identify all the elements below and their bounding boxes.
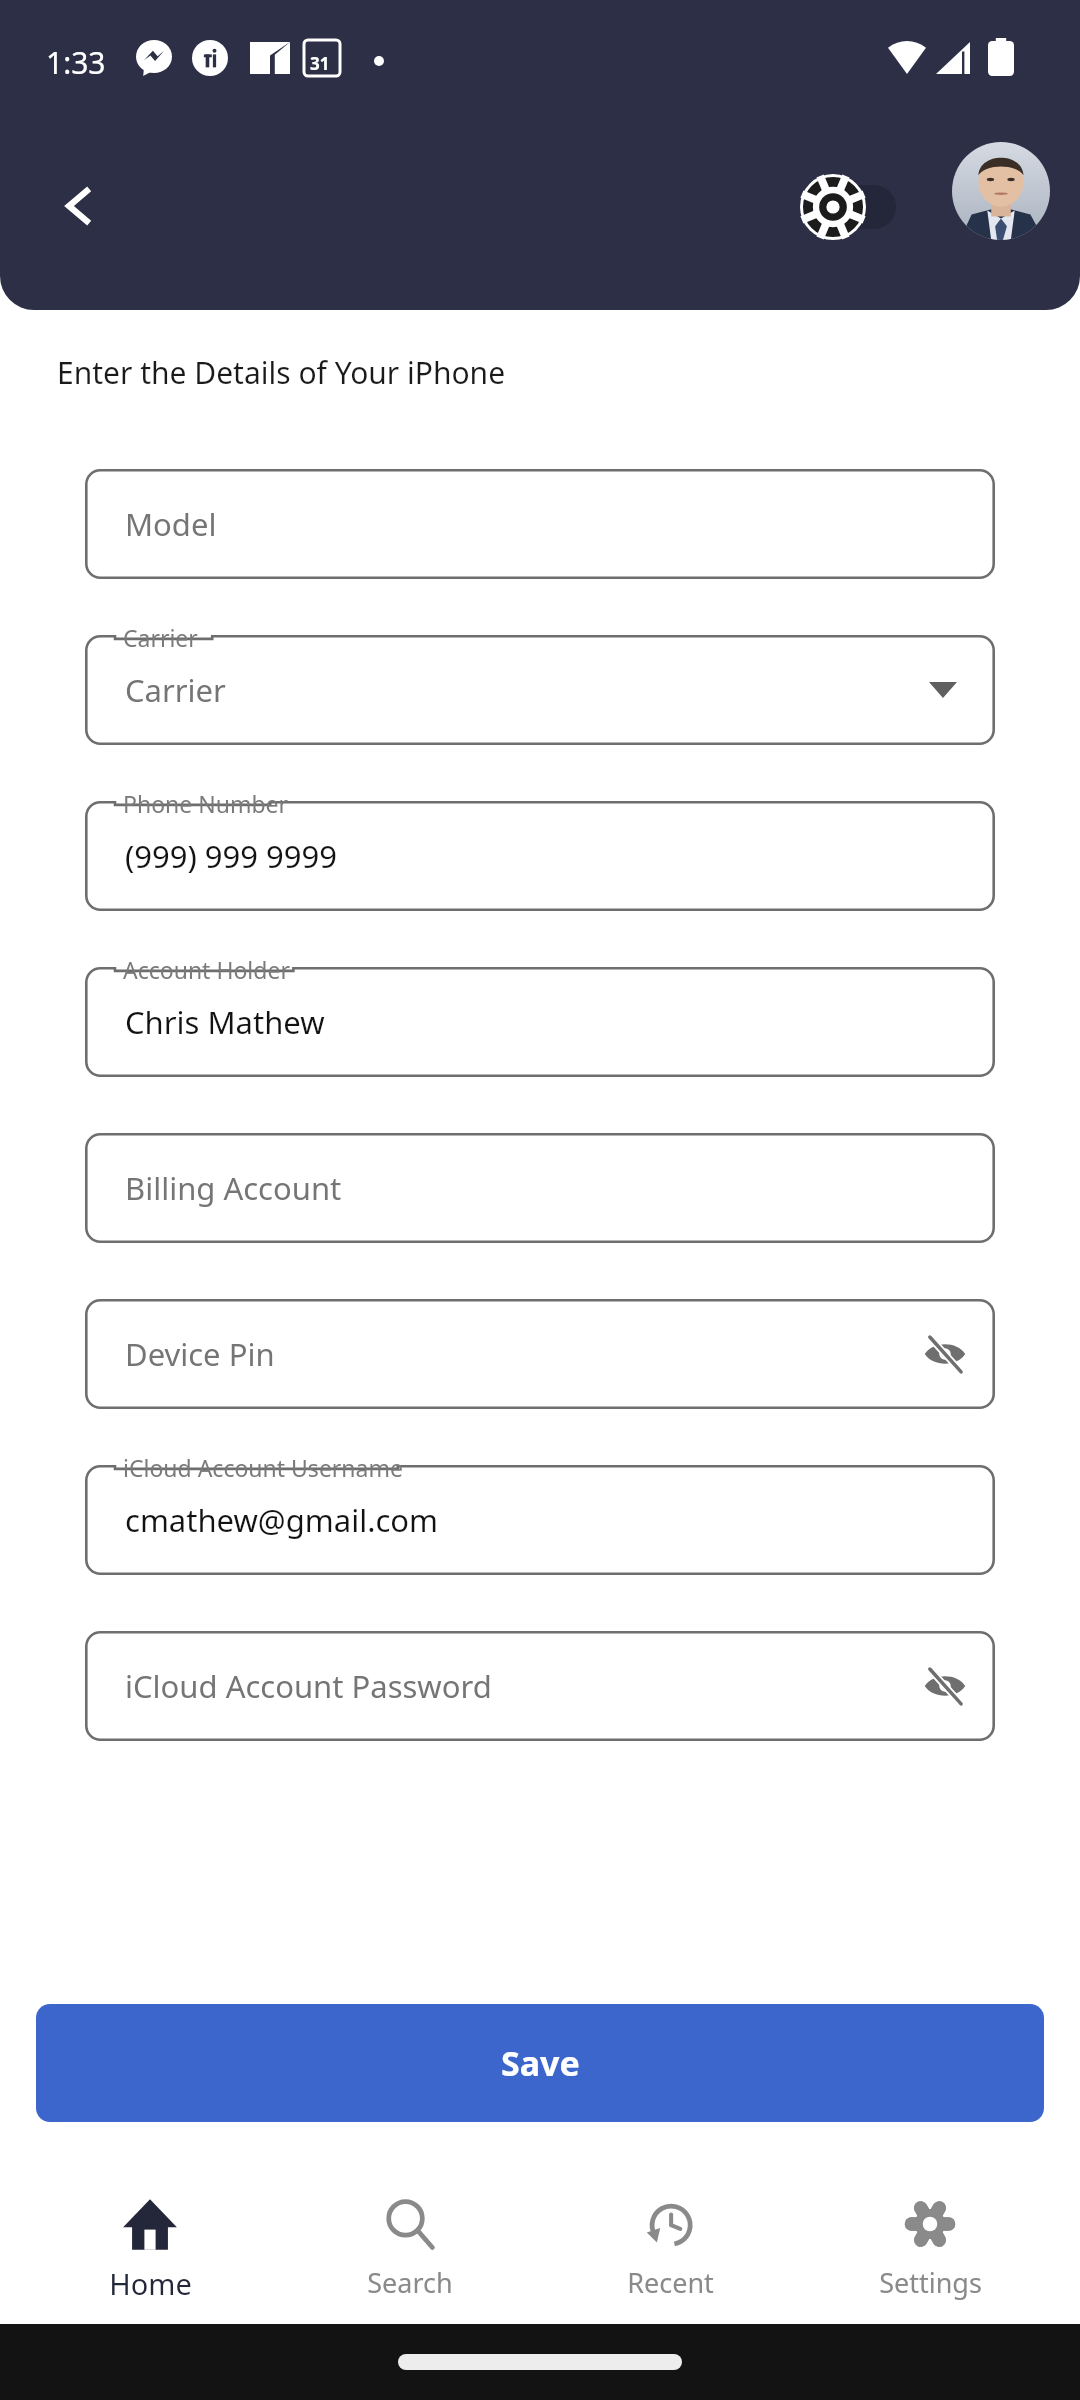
button[interactable]: Open dropdown (915, 662, 971, 718)
button[interactable]: Toggle dark mode (800, 172, 910, 242)
staticText: Settings (879, 2264, 982, 2301)
button[interactable]: iCloud Account Password (85, 1631, 995, 1741)
button[interactable]: Show password (913, 1654, 977, 1718)
button[interactable]: Model (85, 469, 995, 579)
button[interactable]: Recent (560, 2196, 780, 2301)
button[interactable]: Carrier (85, 635, 995, 745)
button[interactable]: Save (36, 2004, 1044, 2122)
staticText: Home (109, 2264, 192, 2303)
staticText: Model (125, 503, 217, 545)
button[interactable]: Back (34, 160, 126, 252)
button[interactable]: Billing Account (85, 1133, 995, 1243)
button[interactable]: Device Pin (85, 1299, 995, 1409)
button[interactable]: Settings (820, 2196, 1040, 2301)
staticText: Search (367, 2264, 453, 2301)
staticText: iCloud Account Password (125, 1665, 492, 1707)
button[interactable]: Show password (913, 1322, 977, 1386)
staticText: Save (501, 2040, 580, 2086)
staticText: 31 (310, 52, 330, 75)
staticText: Carrier (123, 622, 198, 653)
staticText: cmathew@gmail.com (125, 1499, 439, 1541)
staticText: (999) 999 9999 (125, 835, 338, 877)
button[interactable]: Search (300, 2196, 520, 2301)
button[interactable]: Home (40, 2196, 260, 2303)
staticText: Recent (627, 2264, 714, 2301)
staticText: Billing Account (125, 1167, 342, 1209)
staticText: Phone Number (123, 788, 289, 819)
staticText: Account Holder (123, 954, 290, 985)
staticText: Chris Mathew (125, 1001, 325, 1043)
button[interactable]: Phone Number (85, 801, 995, 911)
staticText: 1:33 (46, 42, 106, 83)
staticText: Device Pin (125, 1333, 275, 1375)
button[interactable]: Profile (952, 142, 1050, 240)
staticText: Enter the Details of Your iPhone (57, 352, 506, 393)
staticText: Carrier (125, 669, 226, 711)
button[interactable]: Account Holder (85, 967, 995, 1077)
button[interactable]: iCloud Account Username (85, 1465, 995, 1575)
staticText: iCloud Account Username (123, 1452, 403, 1483)
